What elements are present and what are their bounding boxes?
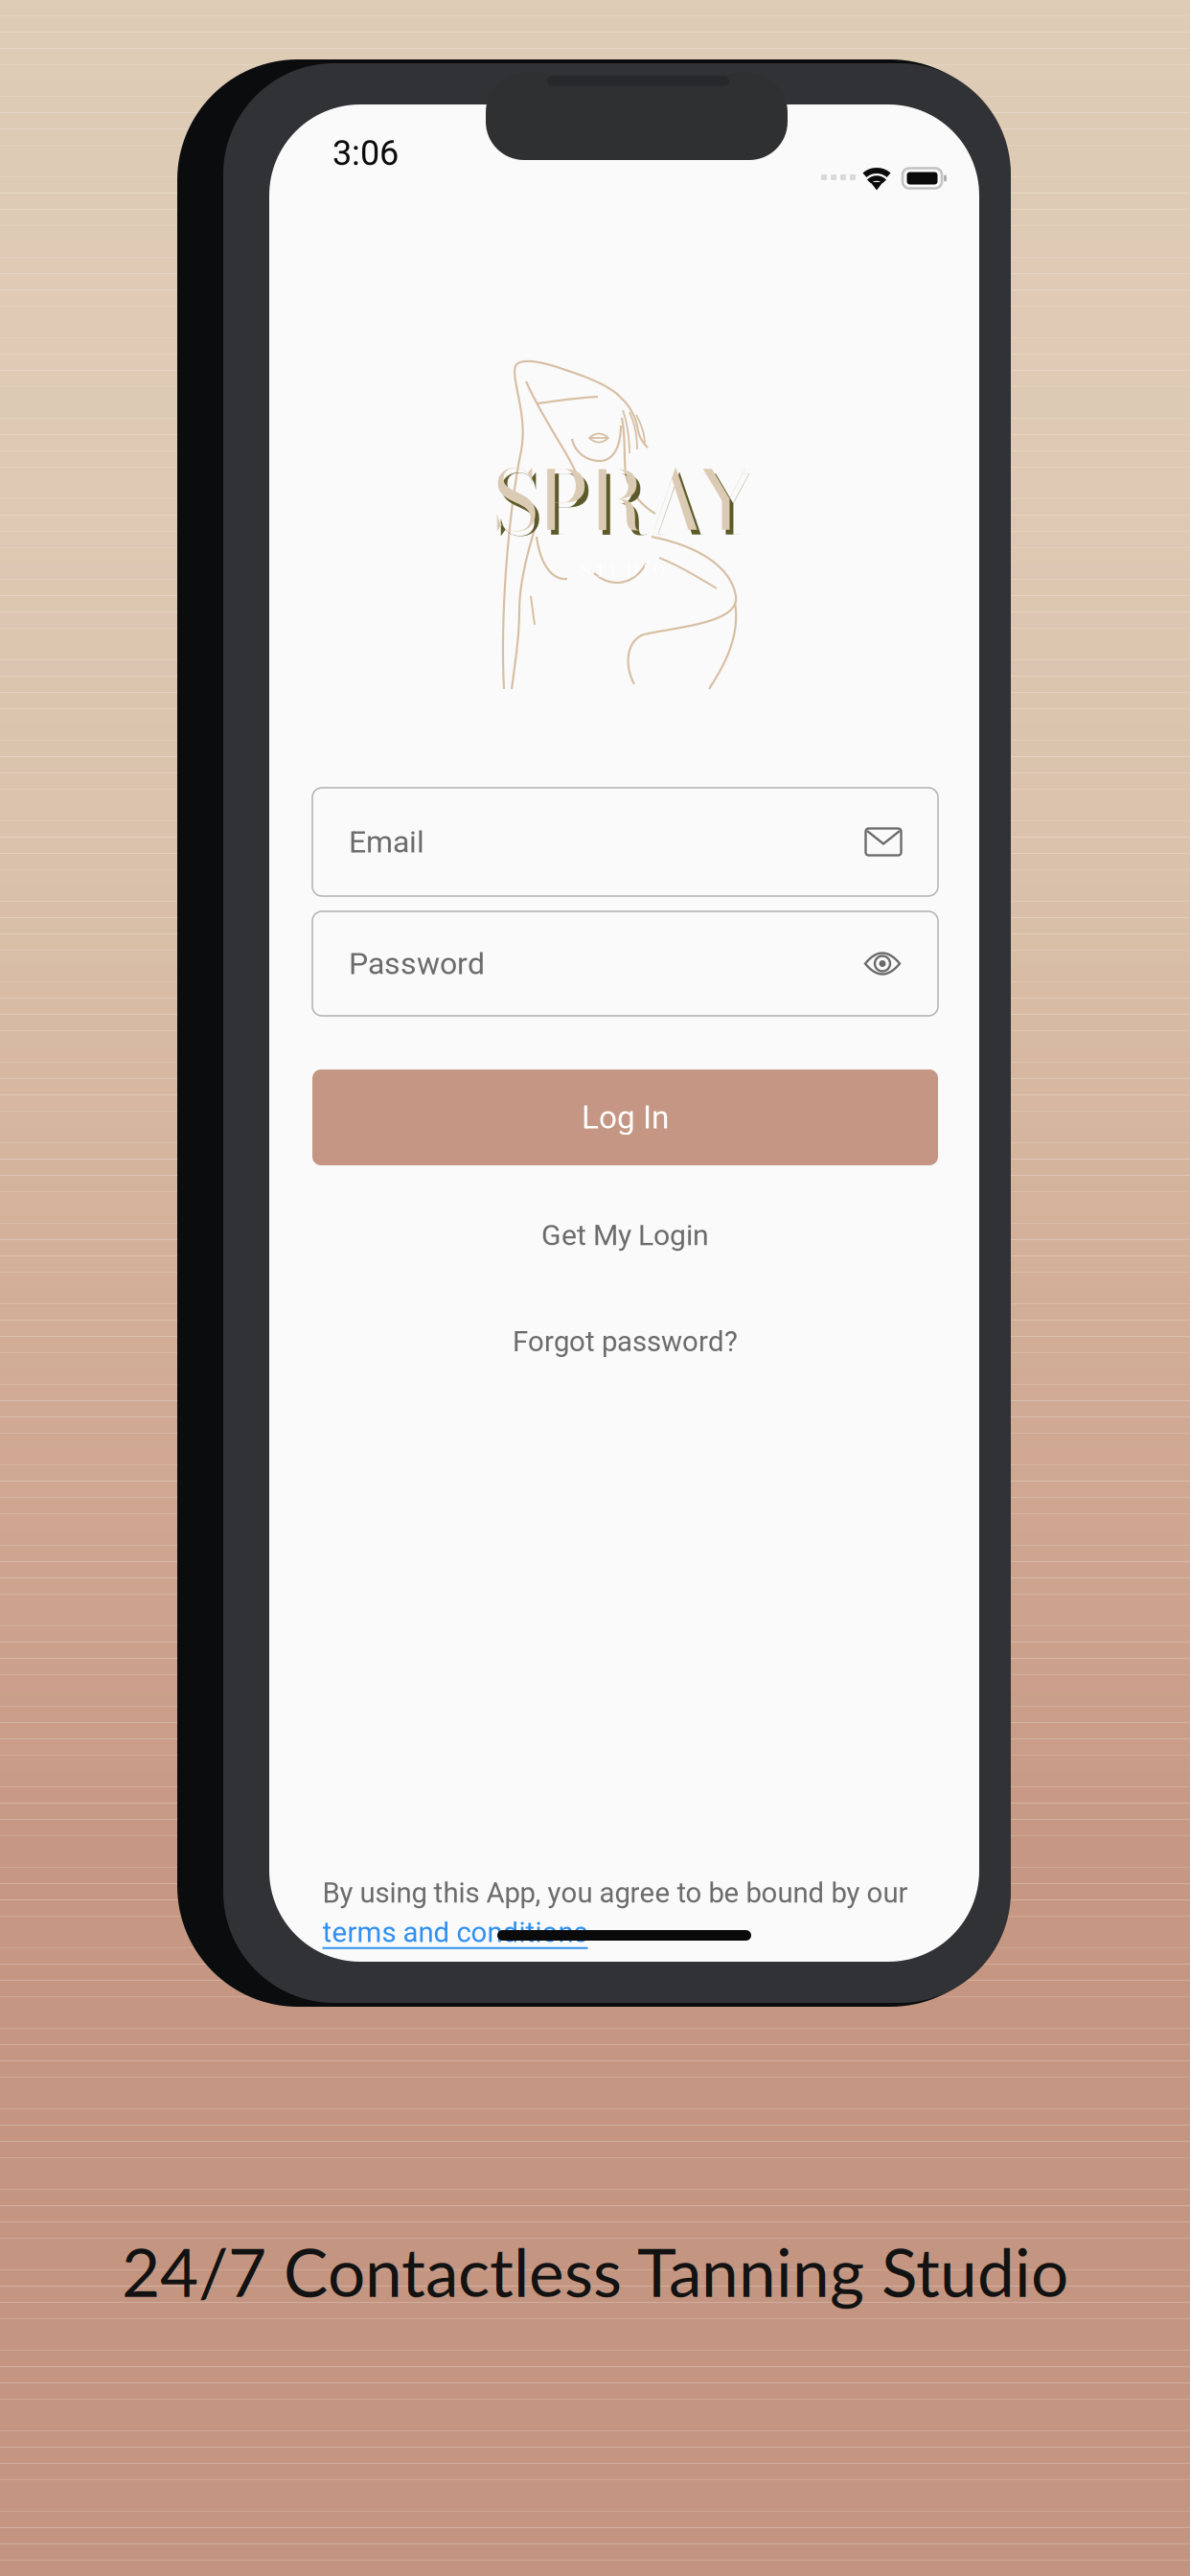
staticText: Email [349,824,424,860]
button[interactable]: Forgot password? [312,1312,938,1371]
staticText: SPRAY [493,439,753,562]
button[interactable]: Password [312,911,938,1016]
staticText: 3:06 [332,133,399,174]
button[interactable]: Email [312,788,938,896]
staticText: Password [349,946,485,982]
staticText: Log In [582,1099,669,1136]
staticText: terms and conditions [322,1916,588,1949]
staticText: Get My Login [541,1218,709,1252]
button[interactable]: Log In [312,1069,938,1165]
staticText: S T U D I O [581,558,665,583]
button[interactable]: terms and conditions [322,1916,588,1949]
staticText: SPRAY [497,444,757,567]
staticText: By using this App, you agree to be bound… [322,1876,908,1909]
staticText: Forgot password? [513,1325,738,1358]
staticText: 24/7 Contactless Tanning Studio [122,2231,1068,2311]
button[interactable]: Get My Login [312,1206,938,1265]
